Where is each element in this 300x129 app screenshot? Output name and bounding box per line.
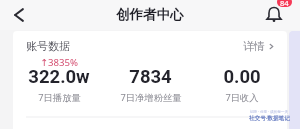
button[interactable]: 0.00 [196, 54, 287, 104]
staticText: 7日净增粉丝量 [120, 91, 182, 104]
button[interactable]: Back [7, 3, 31, 27]
staticText: 记录 · 分享 · 成长每一天 [250, 109, 289, 114]
button[interactable]: 7834 [105, 54, 196, 104]
staticText: ↑3835% [40, 56, 78, 66]
staticText: 账号数据 [26, 39, 70, 53]
button[interactable]: 详情 [243, 39, 275, 53]
staticText: 7日收入 [225, 91, 259, 104]
staticText: 7834 [129, 66, 172, 88]
staticText: 创作者中心 [116, 6, 184, 23]
staticText: 322.0w [28, 66, 90, 88]
button[interactable]: ↑3835% [13, 54, 105, 104]
staticText: 社交号·数据笔记 [249, 114, 290, 122]
staticText: 详情 [243, 39, 265, 53]
staticText: 0.00 [223, 66, 261, 88]
staticText: 84 [280, 0, 289, 7]
button[interactable]: Notifications [262, 3, 286, 27]
staticText: 7日播放量 [38, 91, 81, 104]
